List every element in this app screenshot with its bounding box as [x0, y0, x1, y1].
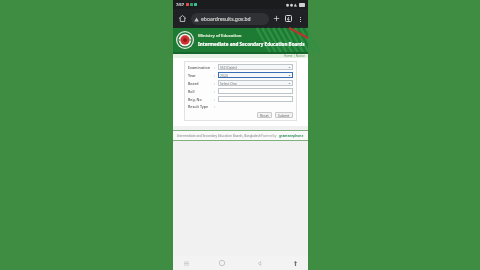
staticText [220, 89, 291, 94]
staticText: Home | Notice [284, 54, 305, 58]
button[interactable]: Keyboard [290, 258, 300, 268]
staticText: : [214, 97, 215, 102]
staticText: Powered by [261, 134, 277, 138]
staticText: Intermediate and Secondary Education Boa… [198, 41, 308, 47]
staticText: : [214, 104, 215, 109]
staticText: Ministry of Education [198, 33, 242, 39]
staticText: Select One [220, 81, 288, 86]
button[interactable]: Submit [275, 112, 293, 118]
staticText [220, 97, 291, 102]
staticText: 4 [287, 16, 290, 22]
staticText: : [214, 65, 215, 70]
staticText: ● ● ▲ [286, 2, 297, 7]
staticText: Examination [188, 65, 210, 70]
button[interactable]: Home [176, 12, 189, 25]
staticText: Year [188, 73, 196, 78]
button[interactable]: Home [217, 258, 227, 268]
button[interactable] [218, 88, 293, 94]
staticText: 7:57 [176, 2, 184, 7]
button[interactable]: Reset [257, 112, 272, 118]
button[interactable]: Back [254, 258, 264, 268]
button[interactable]: More options [295, 14, 305, 24]
staticText: SSC/Dakhil [220, 65, 288, 70]
staticText: Board [188, 81, 199, 86]
staticText: grameenphone [279, 134, 304, 138]
button[interactable]: Select One [218, 80, 293, 86]
staticText: Submit [278, 113, 290, 118]
staticText: 2024 [220, 73, 288, 78]
staticText: : [214, 89, 215, 94]
staticText: Reg. No [188, 97, 202, 102]
staticText: Result Type [188, 104, 209, 109]
button[interactable]: Tabs [283, 13, 294, 24]
button[interactable]: SSC/Dakhil [218, 64, 293, 70]
button[interactable]: eboardresults.gov.bd [191, 13, 269, 25]
button[interactable] [218, 96, 293, 102]
staticText: Intermediate and Secondary Education Boa… [177, 134, 261, 138]
button[interactable]: 2024 [218, 72, 293, 78]
button[interactable]: New tab [271, 13, 282, 24]
staticText: Reset [260, 113, 269, 118]
button[interactable]: Recent apps [181, 258, 191, 268]
staticText: Roll [188, 89, 195, 94]
staticText: eboardresults.gov.bd [201, 16, 251, 23]
staticText: : [214, 73, 215, 78]
staticText: : [214, 81, 215, 86]
